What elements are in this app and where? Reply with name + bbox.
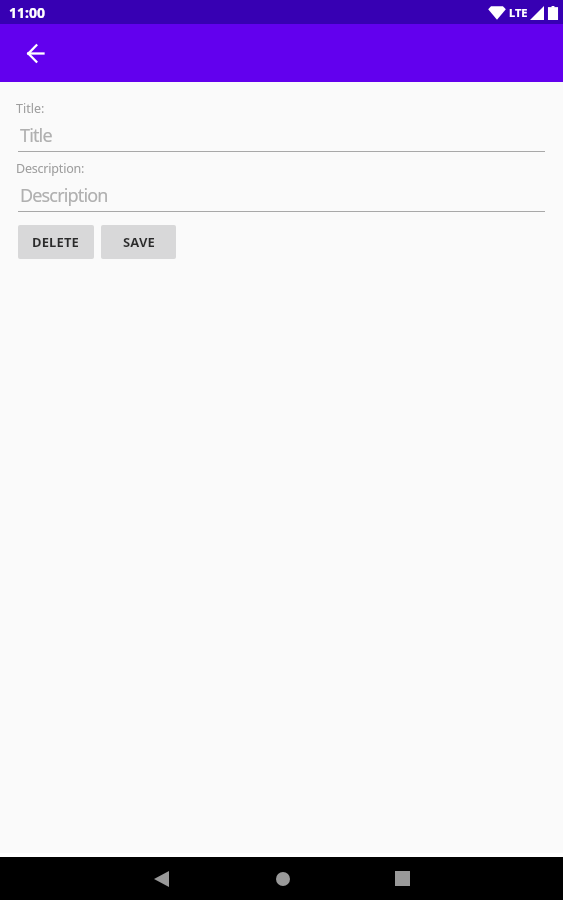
- staticText: Title: [20, 123, 52, 148]
- staticText: 11:00: [9, 3, 45, 22]
- staticText: Description: [20, 183, 108, 208]
- button[interactable]: Title: [18, 123, 545, 152]
- button[interactable]: Navigate up: [11, 29, 59, 77]
- staticText: Description:: [16, 160, 85, 177]
- button[interactable]: Description: [18, 183, 545, 212]
- button[interactable]: Recent apps: [381, 857, 424, 900]
- staticText: LTE: [509, 5, 528, 20]
- button[interactable]: SAVE: [101, 225, 176, 259]
- staticText: SAVE: [123, 233, 155, 251]
- button[interactable]: Home: [261, 857, 304, 900]
- button[interactable]: DELETE: [18, 225, 94, 259]
- staticText: DELETE: [32, 233, 80, 251]
- button[interactable]: Back: [140, 857, 183, 900]
- staticText: Title:: [16, 100, 45, 117]
